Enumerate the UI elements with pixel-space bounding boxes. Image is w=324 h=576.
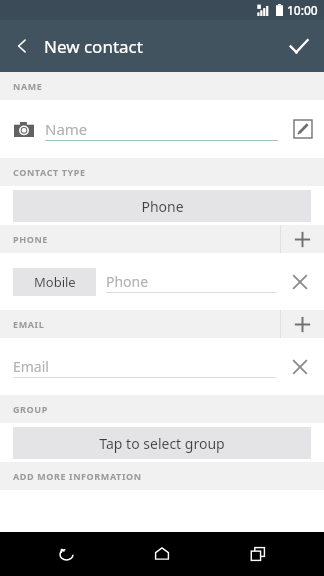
staticText: ADD MORE INFORMATION xyxy=(13,470,142,482)
button[interactable]: Home xyxy=(132,532,192,576)
button[interactable]: Back xyxy=(36,532,96,576)
button[interactable]: Edit name details xyxy=(288,114,318,144)
staticText: Tap to select group xyxy=(99,434,225,453)
button[interactable]: Recent apps xyxy=(228,532,288,576)
button[interactable]: Add email xyxy=(281,310,324,338)
staticText: CONTACT TYPE xyxy=(13,166,86,178)
button[interactable]: Phone xyxy=(13,190,311,222)
button[interactable]: Add photo xyxy=(11,116,37,142)
staticText: PHONE xyxy=(13,233,48,245)
staticText: Phone xyxy=(141,197,184,216)
staticText: GROUP xyxy=(13,403,48,415)
staticText: Email xyxy=(13,357,49,376)
staticText: 10:00 xyxy=(287,2,318,18)
button[interactable]: Back xyxy=(0,20,44,72)
button[interactable]: Add phone xyxy=(281,225,324,253)
staticText: Mobile xyxy=(34,273,76,291)
staticText: Name xyxy=(45,119,88,139)
staticText: New contact xyxy=(44,35,143,58)
button[interactable]: Remove email xyxy=(282,349,318,385)
button[interactable]: Save xyxy=(274,20,324,72)
button[interactable]: Remove phone xyxy=(282,264,318,300)
button[interactable]: Mobile xyxy=(13,268,96,296)
staticText: Phone xyxy=(106,272,149,291)
staticText: EMAIL xyxy=(13,318,45,330)
button[interactable]: Tap to select group xyxy=(13,427,311,459)
staticText: NAME xyxy=(13,80,43,92)
